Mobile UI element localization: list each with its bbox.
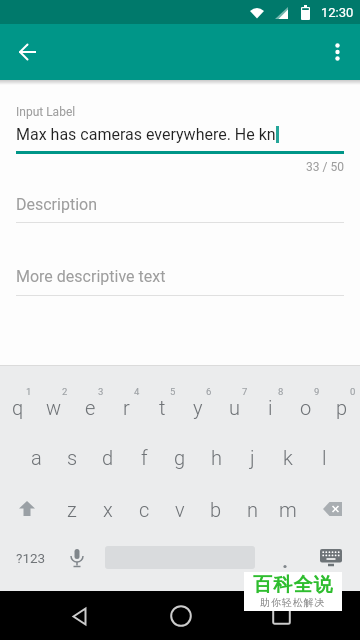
staticText: ?123	[16, 550, 46, 566]
staticText: 5	[170, 386, 176, 397]
button[interactable]	[59, 596, 99, 636]
button[interactable]: l	[306, 442, 342, 472]
button[interactable]: u	[216, 392, 252, 422]
button[interactable]: d	[90, 442, 126, 472]
button[interactable]	[161, 596, 201, 636]
staticText: y	[193, 396, 203, 419]
button[interactable]: y	[180, 392, 216, 422]
button[interactable]: v	[162, 494, 198, 524]
staticText: i	[268, 396, 273, 419]
staticText: g	[174, 446, 186, 469]
staticText: 6	[206, 386, 212, 397]
staticText: Max has cameras everywhere. He kn	[16, 125, 276, 144]
button[interactable]: n	[234, 494, 270, 524]
button[interactable]	[326, 41, 348, 63]
button[interactable]: t	[144, 392, 180, 422]
staticText: s	[67, 446, 78, 469]
staticText: Description	[16, 195, 97, 214]
button[interactable]: b	[198, 494, 234, 524]
staticText: w	[46, 396, 62, 419]
staticText: a	[31, 446, 42, 469]
button[interactable]: g	[162, 442, 198, 472]
staticText: k	[283, 446, 293, 469]
staticText: 12:30	[321, 5, 354, 20]
staticText: h	[211, 446, 222, 469]
button[interactable]: e	[72, 392, 108, 422]
staticText: Input Label	[16, 105, 76, 119]
button[interactable]: 百科全说	[244, 572, 342, 611]
staticText: 3	[98, 386, 104, 397]
button[interactable]: More descriptive text	[16, 267, 166, 286]
staticText: u	[229, 396, 240, 419]
button[interactable]	[0, 494, 54, 524]
button[interactable]: s	[54, 442, 90, 472]
staticText: 8	[278, 386, 284, 397]
staticText: 9	[314, 386, 320, 397]
button[interactable]: p	[324, 392, 360, 422]
button[interactable]	[62, 543, 92, 573]
button[interactable]	[270, 543, 300, 573]
button[interactable]: f	[126, 442, 162, 472]
staticText: m	[279, 498, 297, 521]
button[interactable]	[261, 596, 301, 636]
button[interactable]: c	[126, 494, 162, 524]
staticText: 2	[62, 386, 68, 397]
button[interactable]: q	[0, 392, 36, 422]
button[interactable]: Max has cameras everywhere. He kn	[16, 125, 279, 144]
button[interactable]: ?123	[8, 543, 54, 573]
button[interactable]	[316, 543, 346, 573]
staticText: 百科全说	[253, 573, 334, 597]
staticText: 33 / 50	[306, 160, 344, 174]
button[interactable]: h	[198, 442, 234, 472]
staticText: v	[175, 498, 185, 521]
staticText: More descriptive text	[16, 267, 166, 286]
staticText: q	[12, 396, 24, 419]
staticText: p	[336, 396, 348, 419]
button[interactable]: j	[234, 442, 270, 472]
staticText: j	[250, 446, 255, 469]
button[interactable]: Description	[16, 195, 97, 214]
button[interactable]: r	[108, 392, 144, 422]
staticText: c	[139, 498, 150, 521]
staticText: l	[322, 446, 327, 469]
button[interactable]: a	[18, 442, 54, 472]
staticText: 4	[134, 386, 140, 397]
button[interactable]: i	[252, 392, 288, 422]
button[interactable]: w	[36, 392, 72, 422]
staticText: 助你轻松解决	[260, 596, 326, 609]
staticText: d	[102, 446, 114, 469]
staticText: n	[247, 498, 258, 521]
staticText: t	[159, 396, 166, 419]
button[interactable]	[16, 40, 40, 64]
staticText: x	[103, 498, 113, 521]
button[interactable]: m	[270, 494, 306, 524]
staticText: o	[300, 396, 312, 419]
staticText: r	[123, 396, 130, 419]
button[interactable]: o	[288, 392, 324, 422]
staticText: f	[141, 446, 148, 469]
staticText: e	[85, 396, 96, 419]
staticText: b	[210, 498, 222, 521]
button[interactable]: x	[90, 494, 126, 524]
staticText: z	[67, 498, 77, 521]
staticText: 0	[350, 386, 356, 397]
button[interactable]: k	[270, 442, 306, 472]
button[interactable]	[306, 494, 360, 524]
staticText: 1	[26, 386, 32, 397]
staticText: 7	[242, 386, 248, 397]
button[interactable]: z	[54, 494, 90, 524]
